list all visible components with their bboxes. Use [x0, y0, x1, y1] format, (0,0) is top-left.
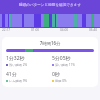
staticText: 04:00	[60, 28, 69, 32]
staticText: 01:00	[31, 28, 40, 32]
button[interactable]: 7時間16分	[2, 37, 98, 87]
staticText: 41分	[6, 71, 17, 78]
staticText: 深い睡眠 11%	[55, 63, 75, 67]
staticText: 睡眠のパターンと時間を確認できます	[0, 3, 100, 8]
staticText: 06:40	[89, 28, 98, 32]
staticText: 5分05秒	[52, 55, 71, 62]
staticText: 1分32秒	[6, 55, 25, 62]
staticText: 0秒	[52, 71, 60, 78]
staticText: 22:17	[2, 28, 11, 32]
staticText: 覚醒 0%	[55, 79, 67, 83]
staticText: 浅い睡眠 2%	[9, 63, 28, 67]
staticText: 7時間16分	[2, 40, 98, 46]
staticText: レム睡眠 9%	[9, 79, 28, 83]
